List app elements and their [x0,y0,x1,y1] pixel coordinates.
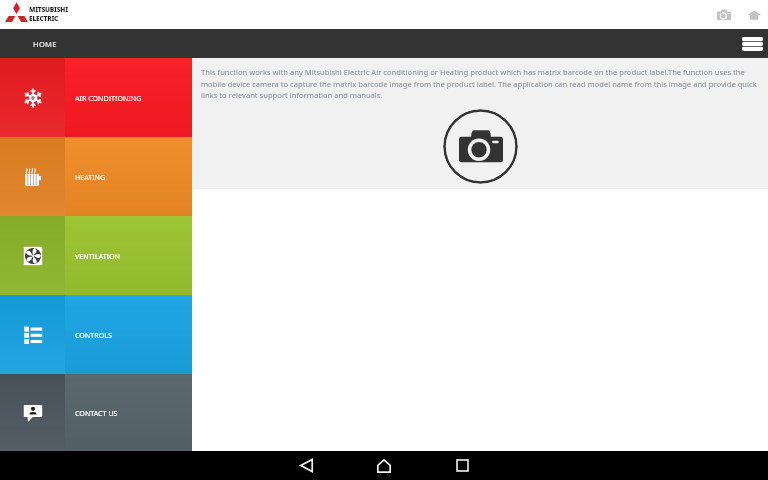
staticText: HOME [33,39,57,49]
button[interactable]: Home [742,3,766,27]
button[interactable]: Back [280,451,332,480]
button[interactable]: HEATING [0,137,192,216]
button[interactable]: Camera [712,3,736,27]
button[interactable]: Menu [737,29,768,58]
staticText: HEATING [75,172,106,182]
staticText: This function works with any Mitsubishi … [201,67,764,100]
staticText: CONTROLS [75,330,112,340]
staticText: CONTACT US [75,408,118,418]
button[interactable]: Scan barcode with camera [443,109,518,184]
button[interactable]: AIR CONDITIONING [0,58,192,137]
button[interactable]: CONTACT US [0,374,192,451]
staticText: AIR CONDITIONING [75,93,142,103]
button[interactable]: HOME [0,29,90,58]
button[interactable]: Home [358,451,410,480]
staticText: MITSUBISHI [29,5,68,14]
staticText: VENTILATION [75,251,120,261]
staticText: ELECTRIC [29,14,59,23]
button[interactable]: CONTROLS [0,295,192,374]
button[interactable]: VENTILATION [0,216,192,295]
button[interactable]: Recents [436,451,488,480]
